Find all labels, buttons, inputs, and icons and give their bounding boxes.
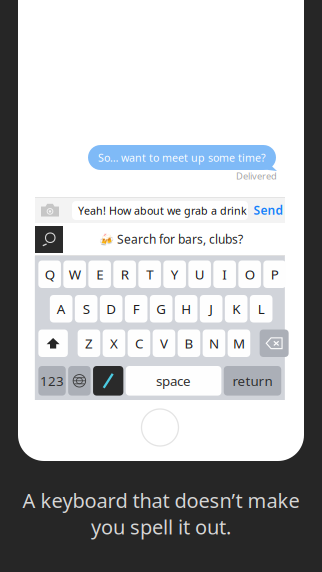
button[interactable]: X [103, 329, 125, 357]
staticText: K [232, 300, 240, 318]
staticText: V [160, 334, 168, 352]
staticText: N [209, 334, 219, 352]
button[interactable]: space [126, 366, 221, 396]
staticText: B [184, 334, 193, 352]
staticText: O [245, 265, 255, 283]
button[interactable]: Shift [38, 329, 68, 357]
button[interactable]: Camera [36, 197, 64, 223]
button[interactable]: return [224, 366, 281, 396]
button[interactable]: D [100, 295, 122, 322]
button[interactable]: C [128, 329, 150, 357]
staticText: M [233, 334, 245, 352]
button[interactable]: H [175, 295, 197, 322]
button[interactable]: O [238, 260, 261, 288]
button[interactable]: F [125, 295, 147, 322]
button[interactable]: S [75, 295, 97, 322]
staticText: X [110, 334, 118, 352]
button[interactable]: I [213, 260, 236, 288]
button[interactable]: Slash keyboard [93, 366, 123, 396]
button[interactable]: K [225, 295, 247, 322]
staticText: 🍻 Search for bars, clubs? [99, 231, 243, 247]
button[interactable]: Q [38, 260, 61, 288]
staticText: A [57, 300, 66, 318]
staticText: Z [85, 334, 93, 352]
staticText: Yeah! How about we grab a drink [78, 203, 247, 218]
staticText: 123 [40, 372, 64, 390]
button[interactable]: L [250, 295, 272, 322]
staticText: E [96, 265, 103, 283]
staticText: F [133, 300, 140, 318]
staticText: return [232, 372, 272, 390]
button[interactable]: Delete [260, 329, 289, 357]
button[interactable]: V [153, 329, 175, 357]
button[interactable]: R [113, 260, 136, 288]
button[interactable]: A [50, 295, 72, 322]
button[interactable]: Y [163, 260, 186, 288]
button[interactable]: B [178, 329, 200, 357]
staticText: D [106, 300, 116, 318]
staticText: space [156, 372, 191, 390]
staticText: S [83, 300, 90, 318]
button[interactable]: Next keyboard [68, 366, 91, 396]
staticText: R [121, 265, 129, 283]
staticText: So… want to meet up some time? [98, 150, 266, 165]
staticText: U [195, 265, 205, 283]
button[interactable]: U [188, 260, 211, 288]
staticText: W [69, 265, 81, 283]
staticText: T [146, 265, 153, 283]
button[interactable]: Send [253, 197, 284, 223]
staticText: L [258, 300, 265, 318]
staticText: H [181, 300, 191, 318]
staticText: you spell it out. [91, 514, 231, 540]
button[interactable]: Z [78, 329, 100, 357]
button[interactable]: E [88, 260, 111, 288]
button[interactable]: 123 [38, 366, 66, 396]
button[interactable]: T [138, 260, 161, 288]
staticText: Delivered [236, 170, 277, 182]
staticText: P [271, 265, 279, 283]
button[interactable]: M [228, 329, 250, 357]
staticText: G [156, 300, 166, 318]
button[interactable]: J [200, 295, 222, 322]
staticText: A keyboard that doesn’t make [22, 487, 299, 514]
button[interactable]: W [63, 260, 86, 288]
button[interactable]: N [203, 329, 225, 357]
button[interactable]: Search suggestions [35, 226, 63, 253]
staticText: Send [253, 202, 283, 218]
staticText: Q [45, 265, 55, 283]
staticText: I [222, 265, 227, 283]
button[interactable]: G [150, 295, 172, 322]
staticText: Y [171, 265, 179, 283]
staticText: C [135, 334, 143, 352]
button[interactable]: P [263, 260, 286, 288]
staticText: J [209, 300, 213, 318]
